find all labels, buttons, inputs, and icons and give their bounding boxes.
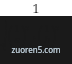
staticText: zuoren5.com	[11, 44, 61, 55]
staticText: 1	[32, 0, 40, 17]
